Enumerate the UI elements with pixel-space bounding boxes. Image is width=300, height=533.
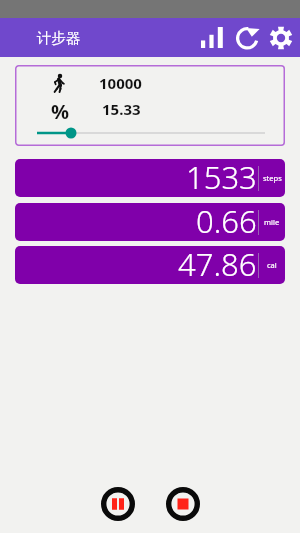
button[interactable]: Stop	[163, 484, 203, 524]
staticText: mile	[264, 217, 280, 227]
staticText: 0.66	[196, 203, 257, 238]
staticText: 10000	[99, 73, 142, 93]
button[interactable]: 10000	[15, 65, 285, 146]
staticText: 47.86	[178, 246, 257, 281]
staticText: %	[51, 98, 70, 119]
button[interactable]: steps	[15, 159, 285, 197]
staticText: cal	[267, 260, 277, 270]
button[interactable]: Refresh	[230, 18, 264, 57]
button[interactable]: Pause	[98, 484, 138, 524]
staticText: 15.33	[102, 99, 141, 119]
staticText: 1533	[186, 159, 257, 194]
button[interactable]: Statistics	[194, 18, 228, 57]
button[interactable]: mile	[15, 203, 285, 241]
staticText: 计步器	[37, 29, 81, 47]
staticText: steps	[263, 173, 282, 183]
button[interactable]	[15, 119, 285, 146]
button[interactable]: Settings	[264, 18, 298, 57]
button[interactable]: cal	[15, 246, 285, 284]
